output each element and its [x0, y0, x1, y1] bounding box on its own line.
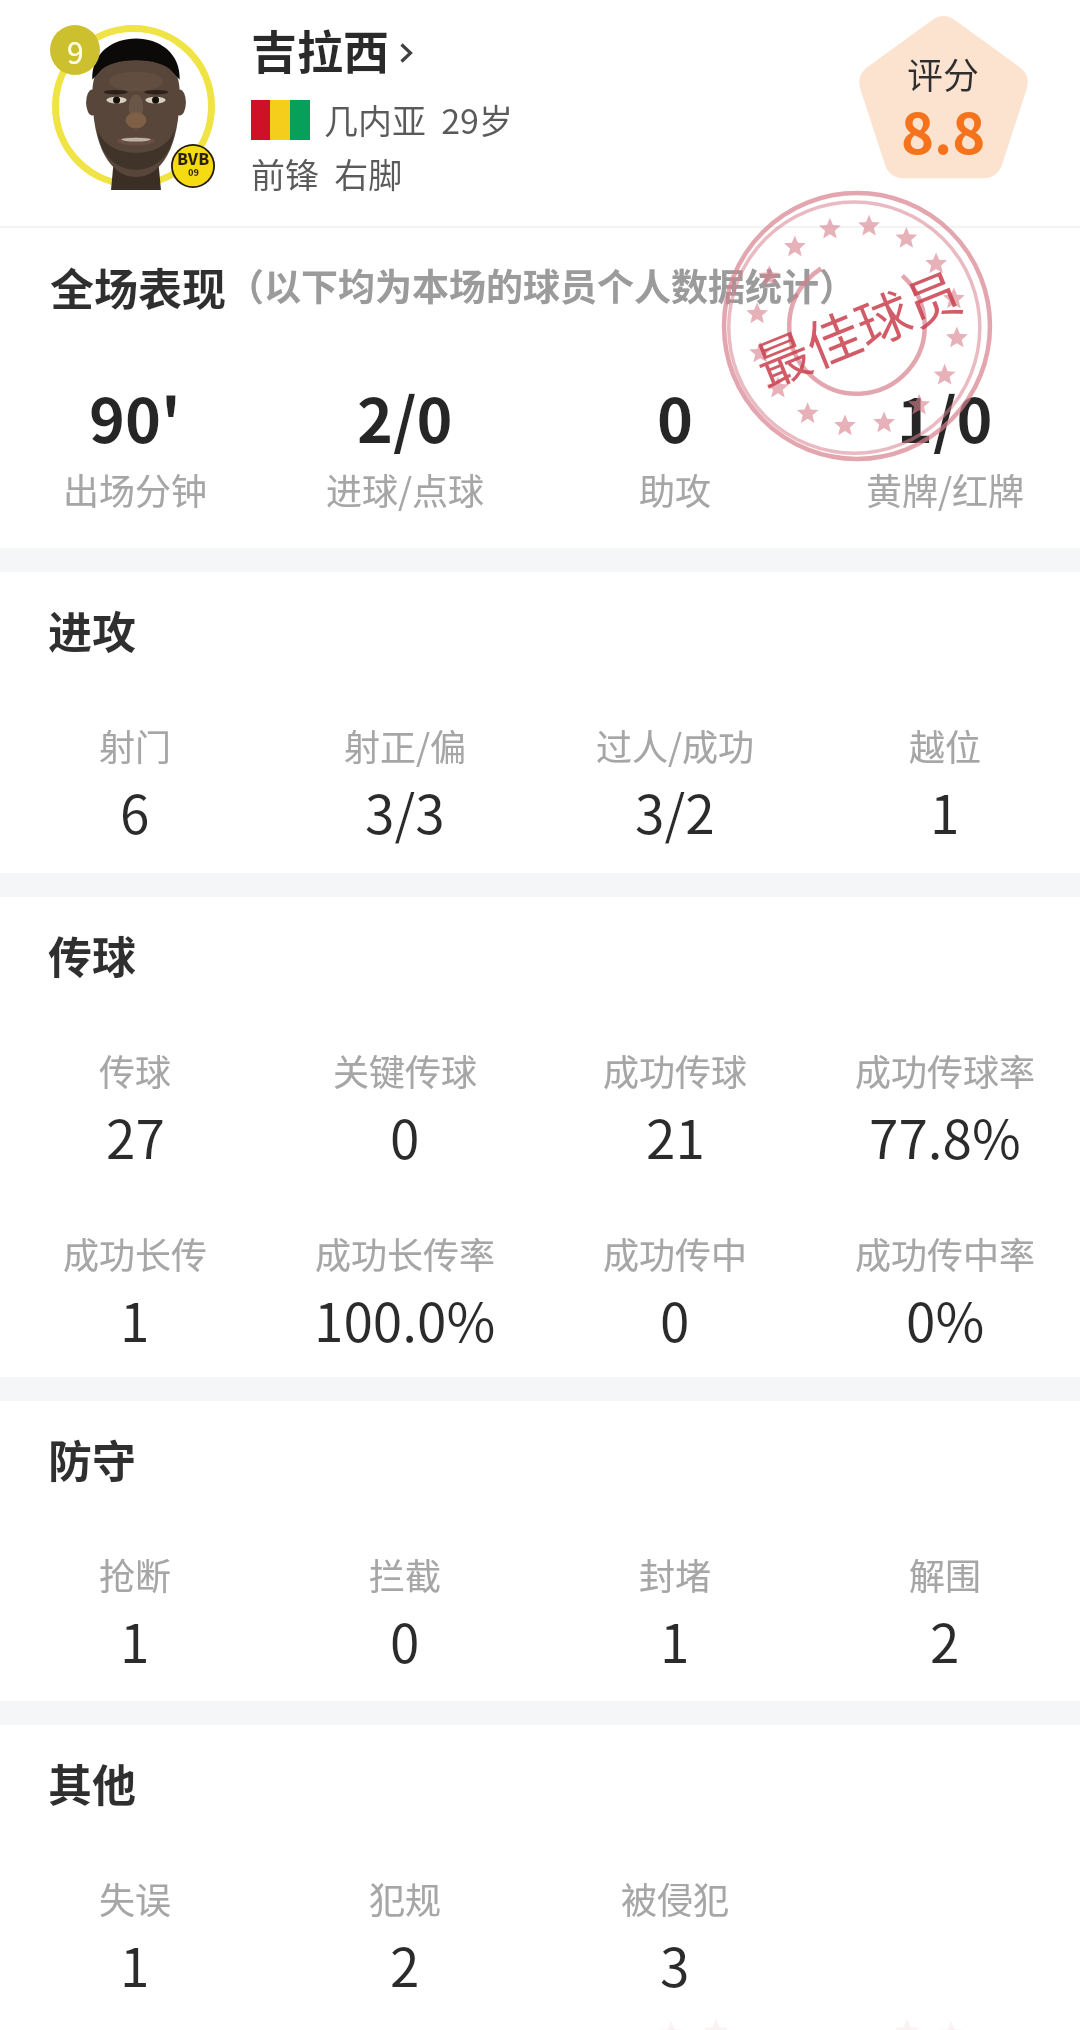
staticText: 传球	[48, 923, 136, 987]
staticText: 0%	[906, 1281, 985, 1358]
staticText: 射门	[99, 719, 172, 771]
button[interactable]: 解围	[810, 1548, 1080, 1679]
staticText: 助攻	[639, 463, 712, 515]
staticText: 犯规	[369, 1872, 442, 1924]
staticText: 77.8%	[869, 1098, 1021, 1175]
staticText: 关键传球	[333, 1044, 478, 1096]
staticText: 最佳球员	[742, 249, 972, 403]
staticText: 抢断	[99, 1548, 172, 1600]
button[interactable]: 成功传球	[540, 1044, 810, 1175]
staticText: 防守	[48, 1427, 136, 1491]
staticText: 90'	[89, 372, 181, 460]
staticText: 27	[106, 1098, 165, 1175]
button[interactable]: 射正/偏	[270, 719, 540, 850]
staticText: 6	[120, 773, 150, 850]
button[interactable]: 封堵	[540, 1548, 810, 1679]
staticText: 成功传球	[603, 1044, 748, 1096]
staticText: 失误	[99, 1872, 172, 1924]
staticText: 吉拉西	[251, 16, 389, 83]
staticText: 越位	[909, 719, 982, 771]
staticText: （以下均为本场的球员个人数据统计）	[227, 258, 856, 312]
button[interactable]: 关键传球	[270, 1044, 540, 1175]
staticText: 3	[660, 1926, 690, 2003]
staticText: 0	[390, 1602, 420, 1679]
staticText: 1	[120, 1602, 150, 1679]
button[interactable]: Player photo	[48, 25, 214, 191]
staticText: 100.0%	[314, 1281, 496, 1358]
staticText: 2	[390, 1926, 420, 2003]
button[interactable]: 成功传中率	[810, 1227, 1080, 1358]
staticText: BVB	[177, 146, 210, 169]
button[interactable]: 拦截	[270, 1548, 540, 1679]
button[interactable]: 1/0	[810, 372, 1080, 515]
button[interactable]: 成功传球率	[810, 1044, 1080, 1175]
staticText: 3/3	[365, 773, 445, 850]
button[interactable]: 2/0	[270, 372, 540, 515]
staticText: 被侵犯	[621, 1872, 730, 1924]
staticText: 21	[646, 1098, 705, 1175]
button[interactable]: 成功长传	[0, 1227, 270, 1358]
staticText: 进球/点球	[326, 463, 485, 515]
button[interactable]: 评分	[862, 19, 1025, 180]
staticText: 1	[930, 773, 960, 850]
staticText: 出场分钟	[63, 463, 208, 515]
staticText: 1	[120, 1281, 150, 1358]
button[interactable]: 失误	[0, 1872, 270, 2003]
button[interactable]: 成功长传率	[270, 1227, 540, 1358]
staticText: 前锋 右脚	[251, 149, 403, 198]
staticText: 成功传球率	[855, 1044, 1036, 1096]
button[interactable]: 抢断	[0, 1548, 270, 1679]
staticText: 成功长传	[63, 1227, 208, 1279]
staticText: 传球	[99, 1044, 172, 1096]
staticText: 评分	[907, 47, 980, 99]
staticText: 成功传中	[603, 1227, 748, 1279]
staticText: 封堵	[639, 1548, 712, 1600]
staticText: 其他	[48, 1751, 136, 1815]
staticText: 成功传中率	[855, 1227, 1036, 1279]
staticText: 全场表现	[50, 255, 226, 319]
staticText: 2	[930, 1602, 960, 1679]
button[interactable]: 成功传中	[540, 1227, 810, 1358]
staticText: 1	[120, 1926, 150, 2003]
staticText: 成功长传率	[315, 1227, 496, 1279]
staticText: 9	[67, 29, 84, 72]
button[interactable]: 0	[540, 372, 810, 515]
staticText: 3/2	[635, 773, 715, 850]
button[interactable]: 过人/成功	[540, 719, 810, 850]
staticText: 1/0	[897, 372, 993, 460]
staticText: 8.8	[901, 89, 986, 170]
staticText: 0	[390, 1098, 420, 1175]
staticText: 进攻	[48, 598, 136, 662]
staticText: 2/0	[357, 372, 453, 460]
staticText: 黄牌/红牌	[866, 463, 1025, 515]
button[interactable]: 吉拉西	[251, 16, 412, 83]
button[interactable]: 越位	[810, 719, 1080, 850]
staticText: 过人/成功	[596, 719, 755, 771]
button[interactable]: 犯规	[270, 1872, 540, 2003]
staticText: 1	[660, 1602, 690, 1679]
button[interactable]: 被侵犯	[540, 1872, 810, 2003]
staticText: 解围	[909, 1548, 982, 1600]
staticText: 几内亚 29岁	[324, 95, 513, 144]
staticText: 0	[657, 372, 693, 460]
staticText: 射正/偏	[344, 719, 467, 771]
button[interactable]: 90'	[0, 372, 270, 515]
staticText: 拦截	[369, 1548, 442, 1600]
button[interactable]: 射门	[0, 719, 270, 850]
staticText: 09	[188, 166, 199, 179]
button[interactable]: 传球	[0, 1044, 270, 1175]
staticText: 0	[660, 1281, 690, 1358]
